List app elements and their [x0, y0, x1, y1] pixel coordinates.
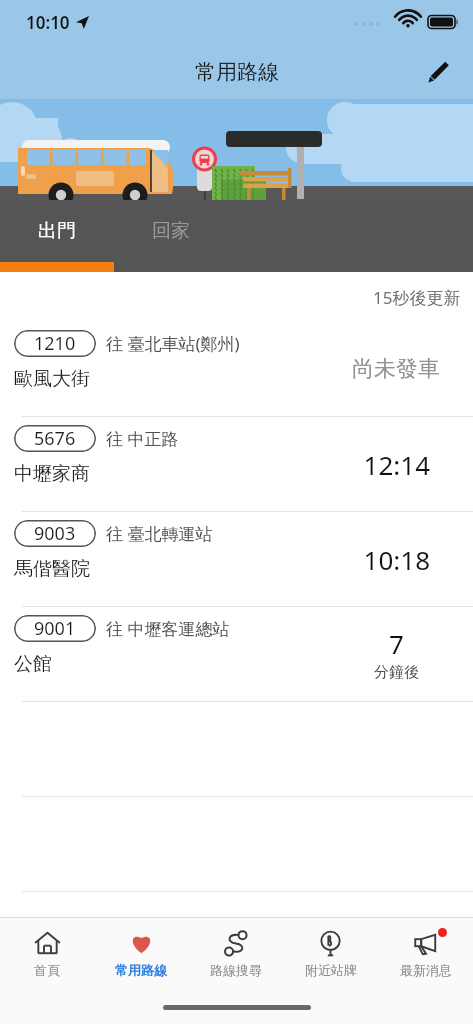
button[interactable]: 出門: [0, 200, 114, 272]
staticText: 7: [389, 626, 404, 661]
button[interactable]: 首頁: [0, 918, 94, 990]
staticText: 公館: [14, 652, 52, 676]
staticText: 附近站牌: [305, 962, 357, 978]
button[interactable]: 9001: [0, 607, 473, 702]
staticText: 回家: [152, 219, 190, 243]
staticText: 往 中壢客運總站: [106, 617, 230, 640]
staticText: 10:18: [363, 542, 430, 577]
staticText: 首頁: [34, 962, 60, 978]
button[interactable]: Edit: [417, 51, 459, 93]
staticText: 中壢家商: [14, 462, 90, 486]
staticText: 10:10: [26, 11, 70, 34]
staticText: 常用路線: [195, 59, 279, 85]
button[interactable]: 1210: [0, 322, 473, 417]
staticText: 1210: [34, 331, 76, 356]
staticText: 往 中正路: [106, 427, 179, 450]
staticText: 往 臺北車站(鄭州): [106, 332, 240, 355]
staticText: 往 臺北轉運站: [106, 522, 213, 545]
staticText: 9001: [34, 616, 76, 641]
button[interactable]: 路線搜尋: [188, 918, 283, 990]
button[interactable]: 最新消息: [378, 918, 473, 990]
staticText: 12:14: [363, 447, 430, 482]
button[interactable]: 附近站牌: [283, 918, 378, 990]
staticText: 最新消息: [400, 962, 452, 978]
button[interactable]: 回家: [114, 200, 228, 272]
button[interactable]: 常用路線: [94, 918, 188, 990]
staticText: 5676: [34, 426, 76, 451]
staticText: 路線搜尋: [210, 962, 262, 978]
button[interactable]: 9003: [0, 512, 473, 607]
staticText: 常用路線: [115, 962, 167, 978]
staticText: 分鐘後: [374, 663, 419, 682]
staticText: 尚未發車: [352, 355, 440, 383]
staticText: 9003: [34, 521, 76, 546]
staticText: 出門: [38, 219, 76, 243]
staticText: 15秒後更新: [373, 286, 461, 309]
button[interactable]: 5676: [0, 417, 473, 512]
staticText: 歐風大街: [14, 367, 90, 391]
staticText: 馬偕醫院: [14, 557, 90, 581]
